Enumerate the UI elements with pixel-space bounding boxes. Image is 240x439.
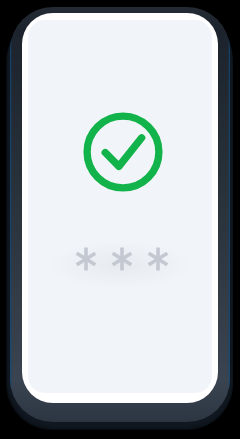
button[interactable]: Success (77, 106, 169, 198)
button[interactable]: Masked PIN (75, 245, 169, 273)
